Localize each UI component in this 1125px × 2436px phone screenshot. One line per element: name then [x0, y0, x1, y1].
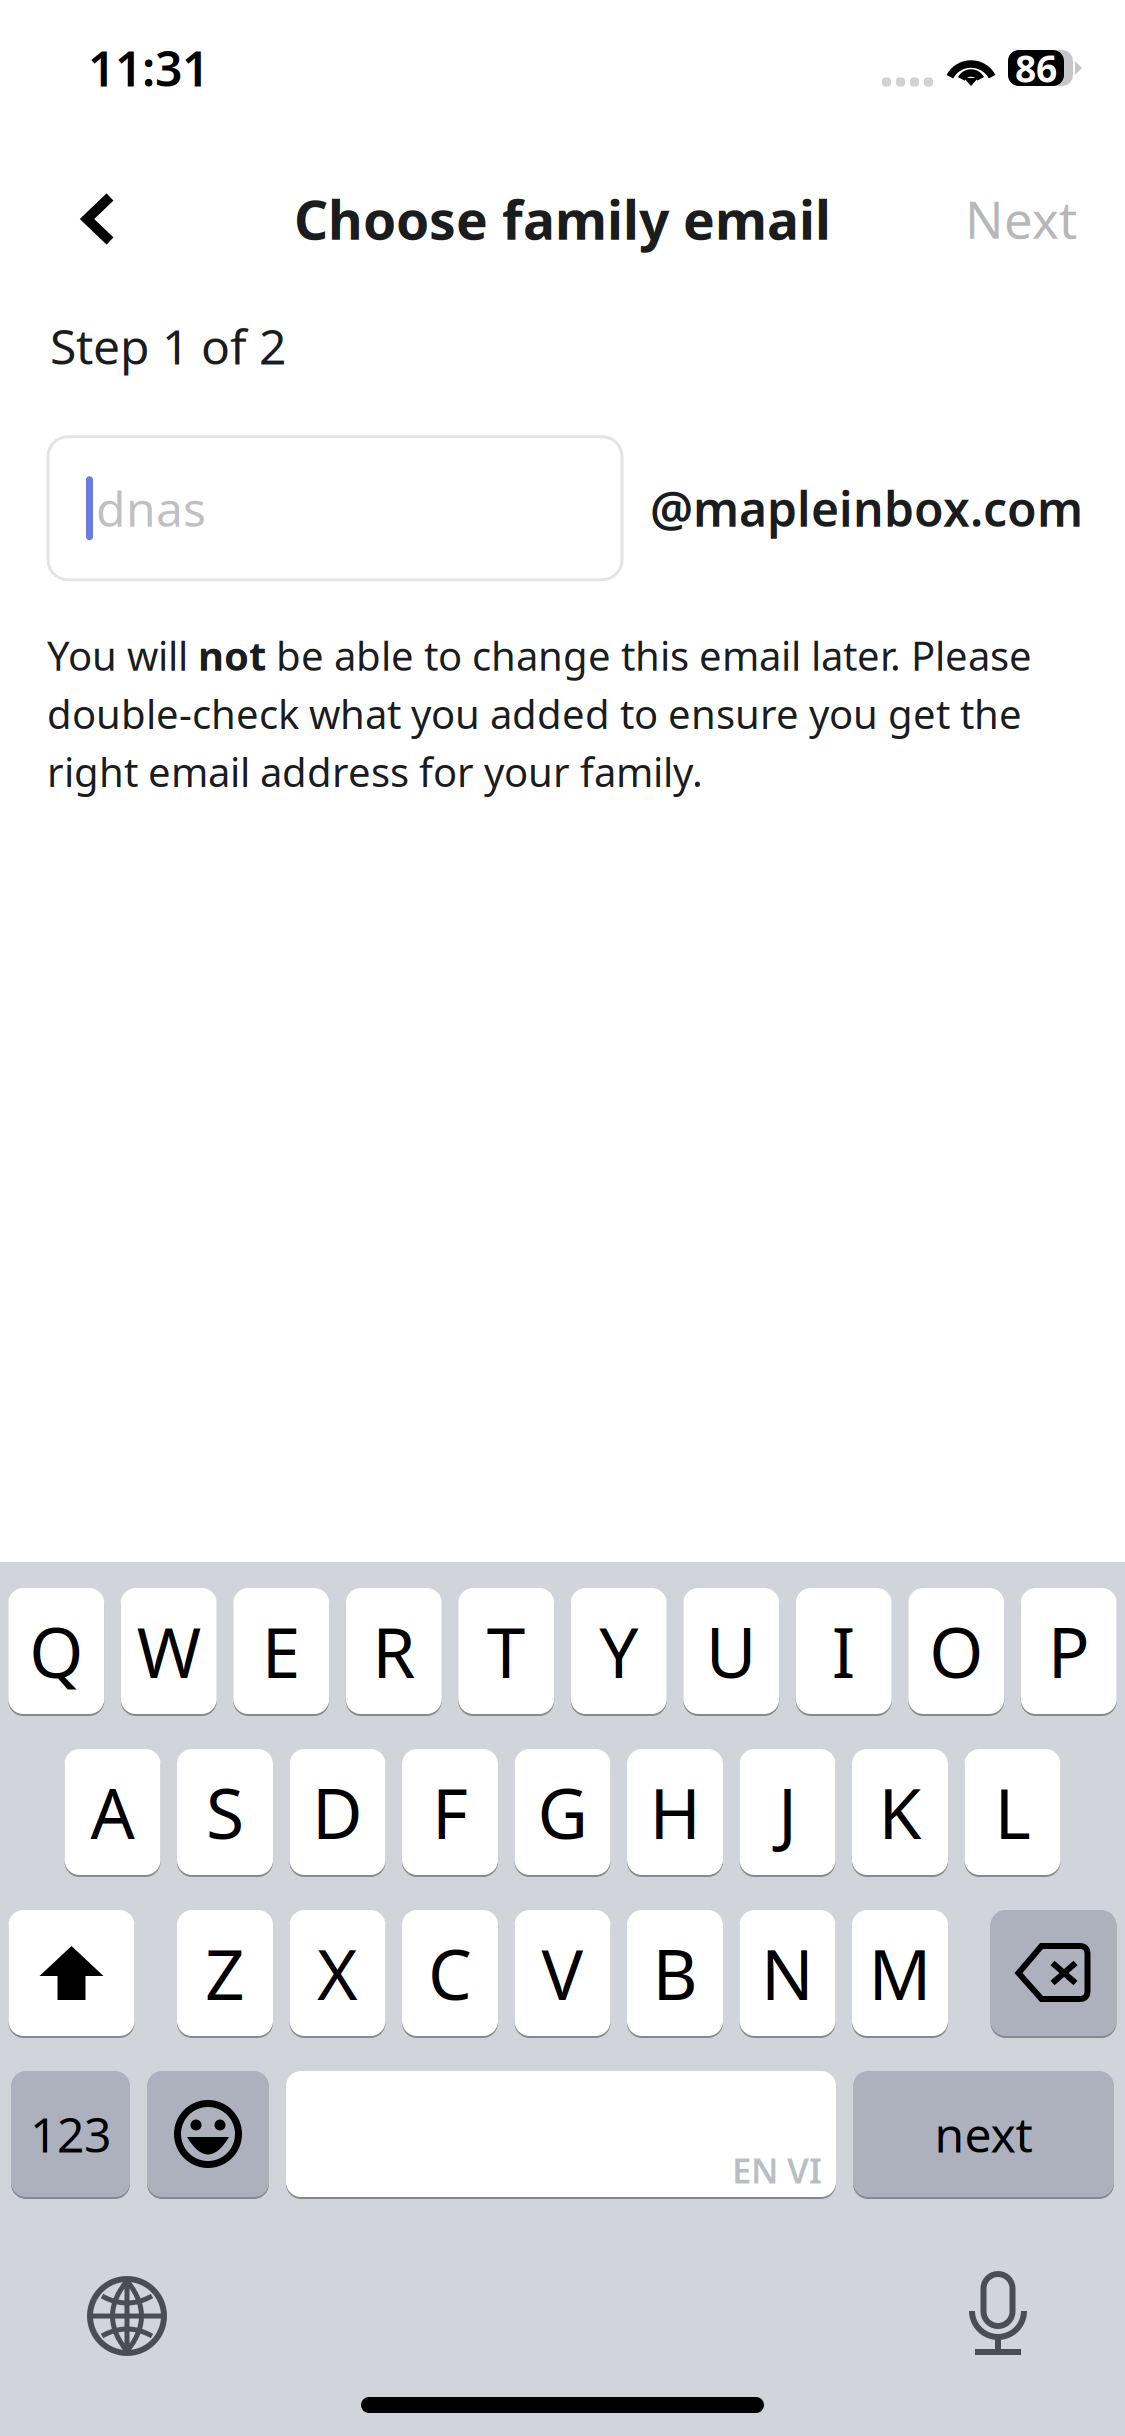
button[interactable]: A [64, 1748, 160, 1876]
staticText: Step 1 of 2 [50, 314, 286, 378]
button[interactable]: V [514, 1909, 610, 2037]
staticText: E [262, 1605, 301, 1697]
staticText: B [652, 1927, 697, 2019]
button[interactable]: EN VI [286, 2070, 836, 2198]
staticText: Next [965, 185, 1077, 253]
staticText: R [372, 1605, 415, 1697]
staticText: T [487, 1605, 526, 1697]
staticText: I [832, 1605, 856, 1697]
button[interactable]: P [1021, 1587, 1117, 1715]
staticText: A [90, 1766, 134, 1858]
button[interactable]: K [852, 1748, 948, 1876]
staticText: G [537, 1766, 587, 1858]
staticText: S [206, 1766, 244, 1858]
button[interactable]: Q [8, 1587, 104, 1715]
staticText: dnas [96, 476, 206, 540]
staticText: C [428, 1927, 472, 2019]
button[interactable]: Next keyboard [63, 2241, 189, 2381]
staticText: @mapleinbox.com [650, 476, 1083, 540]
button[interactable]: S [177, 1748, 273, 1876]
staticText: W [137, 1605, 201, 1697]
button[interactable]: 123 [11, 2070, 130, 2198]
button[interactable] [8, 1909, 134, 2037]
button[interactable]: X [289, 1909, 385, 2037]
button[interactable]: O [908, 1587, 1004, 1715]
button[interactable]: G [514, 1748, 610, 1876]
button[interactable]: E [233, 1587, 329, 1715]
button[interactable]: L [964, 1748, 1060, 1876]
button[interactable]: R [346, 1587, 442, 1715]
button[interactable] [147, 2070, 269, 2198]
staticText: Y [599, 1605, 638, 1697]
staticText: 86 [1015, 43, 1057, 93]
staticText: U [706, 1605, 757, 1697]
button[interactable]: J [739, 1748, 835, 1876]
staticText: H [649, 1766, 700, 1858]
staticText: J [778, 1766, 797, 1858]
staticText: X [317, 1927, 358, 2019]
button[interactable]: U [683, 1587, 779, 1715]
staticText: F [432, 1766, 468, 1858]
button[interactable]: Next [945, 136, 1097, 302]
staticText: L [994, 1766, 1030, 1858]
button[interactable]: Back [45, 136, 151, 302]
button[interactable]: C [402, 1909, 498, 2037]
staticText: 123 [30, 2102, 111, 2166]
staticText: Z [205, 1927, 245, 2019]
button[interactable]: next [853, 2070, 1114, 2198]
button[interactable]: Dictate [939, 2241, 1065, 2381]
button[interactable]: T [458, 1587, 554, 1715]
button[interactable]: W [121, 1587, 217, 1715]
staticText: You will not be able to change this emai… [47, 629, 1032, 798]
staticText: O [929, 1605, 983, 1697]
staticText: V [541, 1927, 583, 2019]
staticText: 11:31 [88, 36, 209, 100]
staticText: K [878, 1766, 921, 1858]
staticText: Choose family email [294, 184, 831, 254]
staticText: N [761, 1927, 814, 2019]
button[interactable]: M [852, 1909, 948, 2037]
button[interactable]: Z [177, 1909, 273, 2037]
button[interactable] [990, 1909, 1116, 2037]
staticText: M [868, 1927, 931, 2019]
button[interactable]: Y [571, 1587, 667, 1715]
button[interactable]: D [289, 1748, 385, 1876]
staticText: P [1048, 1605, 1090, 1697]
staticText: Q [29, 1605, 83, 1697]
button[interactable]: N [739, 1909, 835, 2037]
button[interactable]: B [627, 1909, 723, 2037]
button[interactable]: H [627, 1748, 723, 1876]
staticText: EN VI [732, 2147, 822, 2193]
button[interactable]: I [796, 1587, 892, 1715]
staticText: next [934, 2102, 1032, 2166]
staticText: D [312, 1766, 363, 1858]
button[interactable]: F [402, 1748, 498, 1876]
